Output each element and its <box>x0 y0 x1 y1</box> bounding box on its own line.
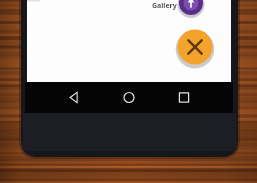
staticText: Gallery <box>152 1 177 11</box>
button[interactable]: Upload to Gallery <box>179 0 203 15</box>
button[interactable]: Close <box>178 30 213 65</box>
button[interactable]: Home <box>118 82 140 113</box>
button[interactable]: Recent apps <box>173 82 195 113</box>
button[interactable]: Back <box>64 82 86 113</box>
button[interactable]: Gallery <box>152 1 181 13</box>
